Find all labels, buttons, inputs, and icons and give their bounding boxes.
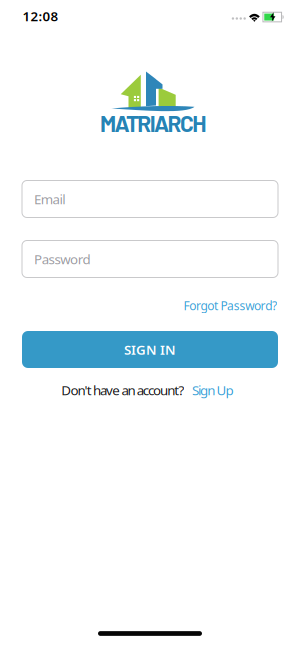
staticText: Forgot Password?: [183, 297, 277, 313]
staticText: Sign Up: [192, 381, 233, 399]
staticText: Password: [34, 250, 91, 268]
button[interactable]: Password: [22, 240, 278, 277]
staticText: 12:08: [22, 7, 58, 25]
staticText: Email: [34, 190, 65, 208]
button[interactable]: Sign Up: [192, 381, 233, 399]
staticText: Don't have an account?: [61, 381, 184, 399]
staticText: SIGN IN: [124, 341, 176, 358]
staticText: MATRIARCH: [100, 109, 206, 137]
button[interactable]: Forgot Password?: [183, 297, 277, 313]
button[interactable]: SIGN IN: [22, 331, 278, 368]
button[interactable]: Email: [22, 180, 278, 217]
